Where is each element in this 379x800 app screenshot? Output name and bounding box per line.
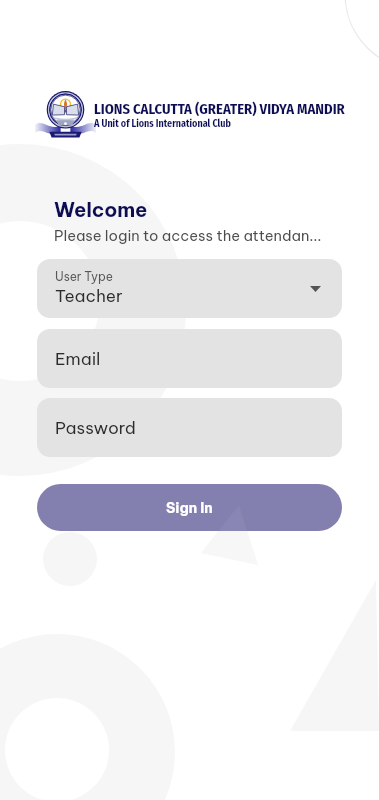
button[interactable]: Email <box>37 329 342 388</box>
staticText: Sign In <box>166 499 213 517</box>
staticText: User Type <box>55 269 113 284</box>
staticText: Email <box>55 348 101 370</box>
staticText: LIONS CALCUTTA (GREATER) VIDYA MANDIR <box>94 100 345 117</box>
staticText: Welcome <box>54 197 148 222</box>
staticText: Password <box>55 417 136 439</box>
button[interactable]: Sign In <box>37 484 342 531</box>
staticText: Teacher <box>55 285 123 307</box>
other: Select user type <box>310 286 321 292</box>
button[interactable]: User Type <box>37 259 342 318</box>
staticText: Please login to access the attendan... <box>54 226 322 245</box>
button[interactable]: Password <box>37 398 342 457</box>
staticText: A Unit of Lions International Club <box>94 118 231 130</box>
